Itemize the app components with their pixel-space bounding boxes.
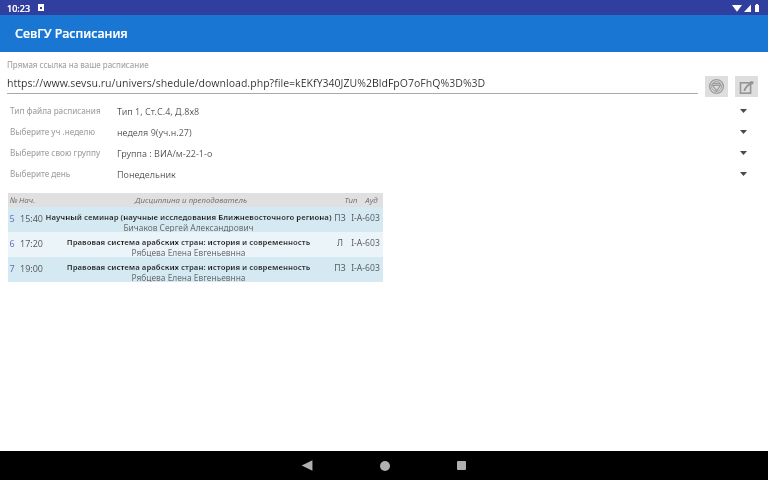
other: Back (301, 460, 314, 471)
staticText: Тип (342, 195, 360, 206)
button[interactable]: Выберите уч .неделю (0, 121, 768, 142)
staticText: Группа : ВИА/м-22-1-о (117, 147, 740, 159)
staticText: Л (332, 237, 348, 249)
button[interactable]: Выберите свою группу (0, 142, 768, 163)
staticText: Выберите уч .неделю (10, 126, 117, 137)
staticText: неделя 9(уч.н.27) (117, 126, 740, 138)
staticText: 17:20 (20, 237, 43, 249)
staticText: Понедельник (117, 168, 740, 180)
staticText: Выберите день (10, 168, 117, 179)
button[interactable]: Home (346, 451, 423, 480)
staticText: № (8, 195, 19, 206)
button[interactable]: 7 (8, 257, 383, 282)
staticText: ПЗ (332, 262, 348, 274)
staticText: Дисциплина и преподаватель (40, 195, 342, 206)
staticText: I-A-603 (348, 237, 383, 249)
button[interactable]: 6 (8, 232, 383, 257)
staticText: Выберите свою группу (10, 147, 117, 158)
button[interactable]: Recent apps (423, 451, 500, 480)
staticText: Правовая система арабских стран: история… (45, 262, 332, 272)
button[interactable]: Back (269, 451, 346, 480)
staticText: I-A-603 (348, 212, 383, 224)
staticText: 5 (8, 212, 16, 224)
staticText: Рябцева Елена Евгеньевнна (45, 247, 332, 257)
staticText: I-A-603 (348, 262, 383, 274)
staticText: Прямая ссылка на ваше расписание (7, 59, 149, 70)
staticText: Научный семинар (научные исследования Бл… (45, 212, 332, 222)
button[interactable]: https://www.sevsu.ru/univers/shedule/dow… (7, 76, 698, 94)
button[interactable]: 5 (8, 207, 383, 232)
staticText: Правовая система арабских стран: история… (45, 237, 332, 247)
staticText: 7 (8, 262, 16, 274)
staticText: 15:40 (20, 212, 43, 224)
staticText: Ауд (360, 195, 383, 206)
staticText: 6 (8, 237, 16, 249)
staticText: 10:23 (7, 2, 31, 14)
button[interactable]: Выберите день (0, 163, 768, 184)
button[interactable]: Download schedule (705, 76, 728, 97)
other: Home (380, 461, 390, 471)
staticText: 19:00 (20, 262, 43, 274)
staticText: Нач. (19, 195, 40, 206)
staticText: Тип 1, Ст.С.4, Д.8х8 (117, 105, 740, 117)
staticText: Рябцева Елена Евгеньевнна (45, 272, 332, 282)
staticText: ПЗ (332, 212, 348, 224)
button[interactable]: Open in browser (735, 76, 758, 97)
other: Recent apps (457, 461, 466, 470)
staticText: Бичаков Сергей Александрович (45, 222, 332, 232)
staticText: Тип файла расписания (10, 105, 117, 116)
staticText: https://www.sevsu.ru/univers/shedule/dow… (7, 76, 486, 90)
button[interactable]: Тип файла расписания (0, 100, 768, 121)
staticText: СевГУ Расписания (15, 25, 128, 42)
